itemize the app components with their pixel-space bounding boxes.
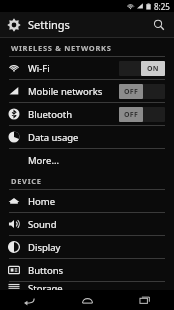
staticText: Data usage [28, 131, 79, 144]
staticText: Storage [28, 282, 63, 290]
staticText: ON [147, 64, 159, 74]
staticText: OFF [124, 110, 139, 120]
staticText: Buttons [28, 264, 64, 277]
staticText: 8:25 [154, 1, 170, 12]
staticText: DEVICE [11, 176, 42, 186]
button[interactable]: Back [0, 290, 58, 310]
button[interactable]: Mobile networks [0, 80, 174, 102]
button[interactable]: More... [0, 149, 174, 171]
staticText: Bluetooth [28, 108, 73, 121]
staticText: More... [28, 154, 60, 167]
button[interactable]: Storage [0, 282, 174, 290]
button[interactable]: Wi-Fi [0, 57, 174, 79]
button[interactable]: Display [0, 236, 174, 258]
button[interactable]: Sound [0, 213, 174, 235]
button[interactable]: Buttons [0, 259, 174, 281]
button[interactable]: Data usage [0, 126, 174, 148]
staticText: WIRELESS & NETWORKS [11, 43, 112, 53]
staticText: Mobile networks [28, 85, 103, 98]
staticText: Home [28, 195, 56, 208]
staticText: Settings [28, 17, 70, 32]
button[interactable]: Search [146, 12, 171, 37]
button[interactable]: ON [119, 61, 165, 76]
button[interactable]: Recent apps [116, 290, 174, 310]
staticText: Display [28, 241, 61, 254]
button[interactable]: OFF [119, 107, 165, 122]
staticText: OFF [124, 87, 139, 97]
button[interactable]: Home [58, 290, 116, 310]
staticText: Wi-Fi [28, 62, 50, 75]
button[interactable]: OFF [119, 84, 165, 99]
button[interactable]: Bluetooth [0, 103, 174, 125]
button[interactable]: Home [0, 190, 174, 212]
staticText: Sound [28, 218, 57, 231]
